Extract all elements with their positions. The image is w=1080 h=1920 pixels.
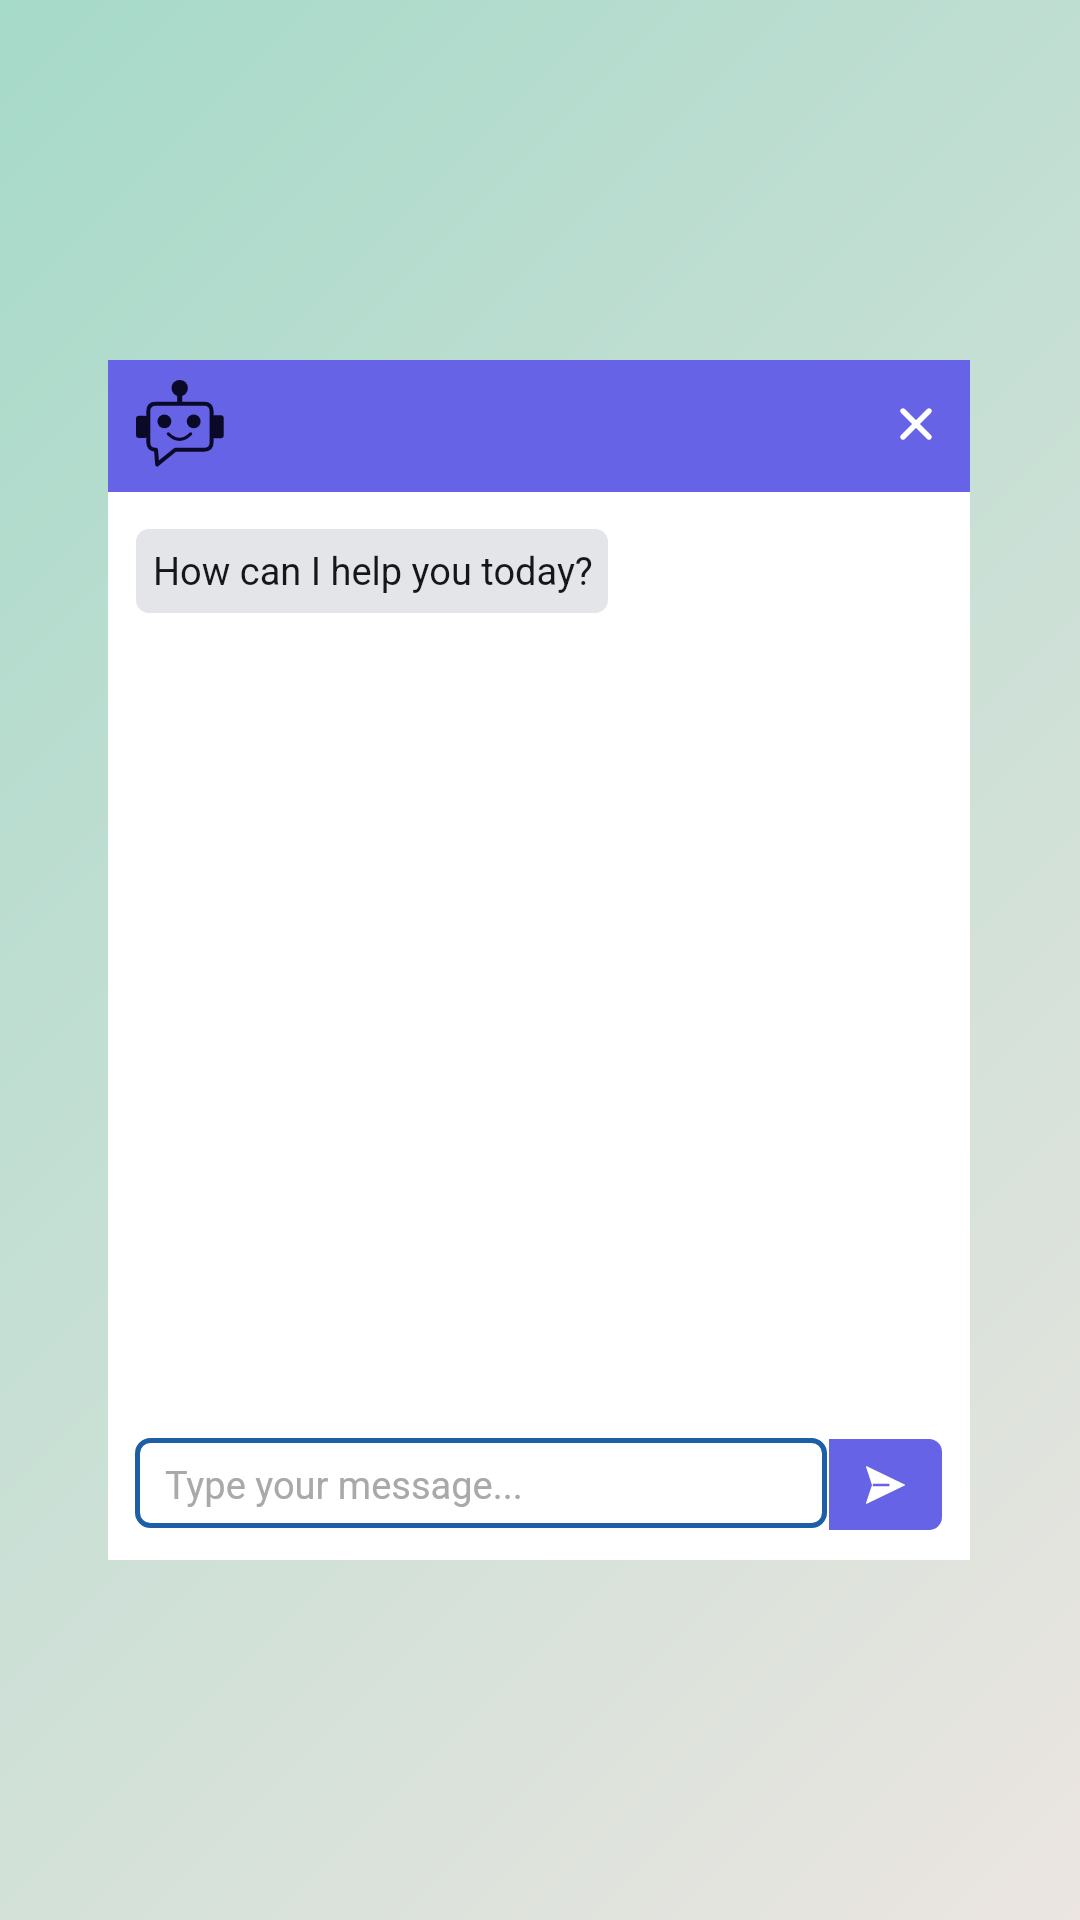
staticText: Type your message... (165, 1464, 523, 1509)
button[interactable]: Close chat (878, 386, 954, 462)
button[interactable]: Type your message... (135, 1438, 827, 1528)
button[interactable]: Chat assistant (136, 380, 224, 467)
staticText: How can I help you today? (153, 550, 593, 595)
button[interactable]: Send message (829, 1439, 942, 1530)
button[interactable]: How can I help you today? (136, 529, 608, 613)
